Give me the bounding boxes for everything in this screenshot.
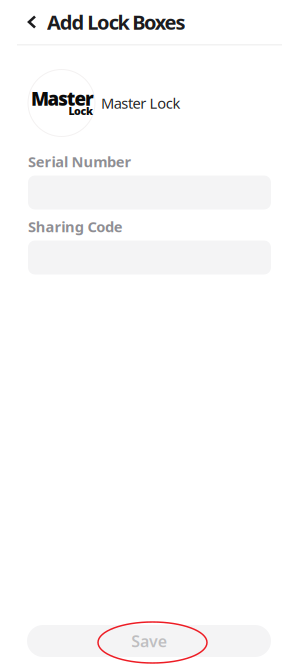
button[interactable]: Back <box>19 6 45 37</box>
staticText: Save <box>131 630 167 652</box>
staticText: Add Lock Boxes <box>47 9 185 35</box>
staticText: Serial Number <box>28 152 132 171</box>
staticText: Sharing Code <box>28 217 123 236</box>
staticText: Lock <box>68 104 93 118</box>
staticText: Master Lock <box>101 93 180 113</box>
staticText: Master <box>31 86 94 111</box>
button[interactable]: Save <box>27 625 271 657</box>
